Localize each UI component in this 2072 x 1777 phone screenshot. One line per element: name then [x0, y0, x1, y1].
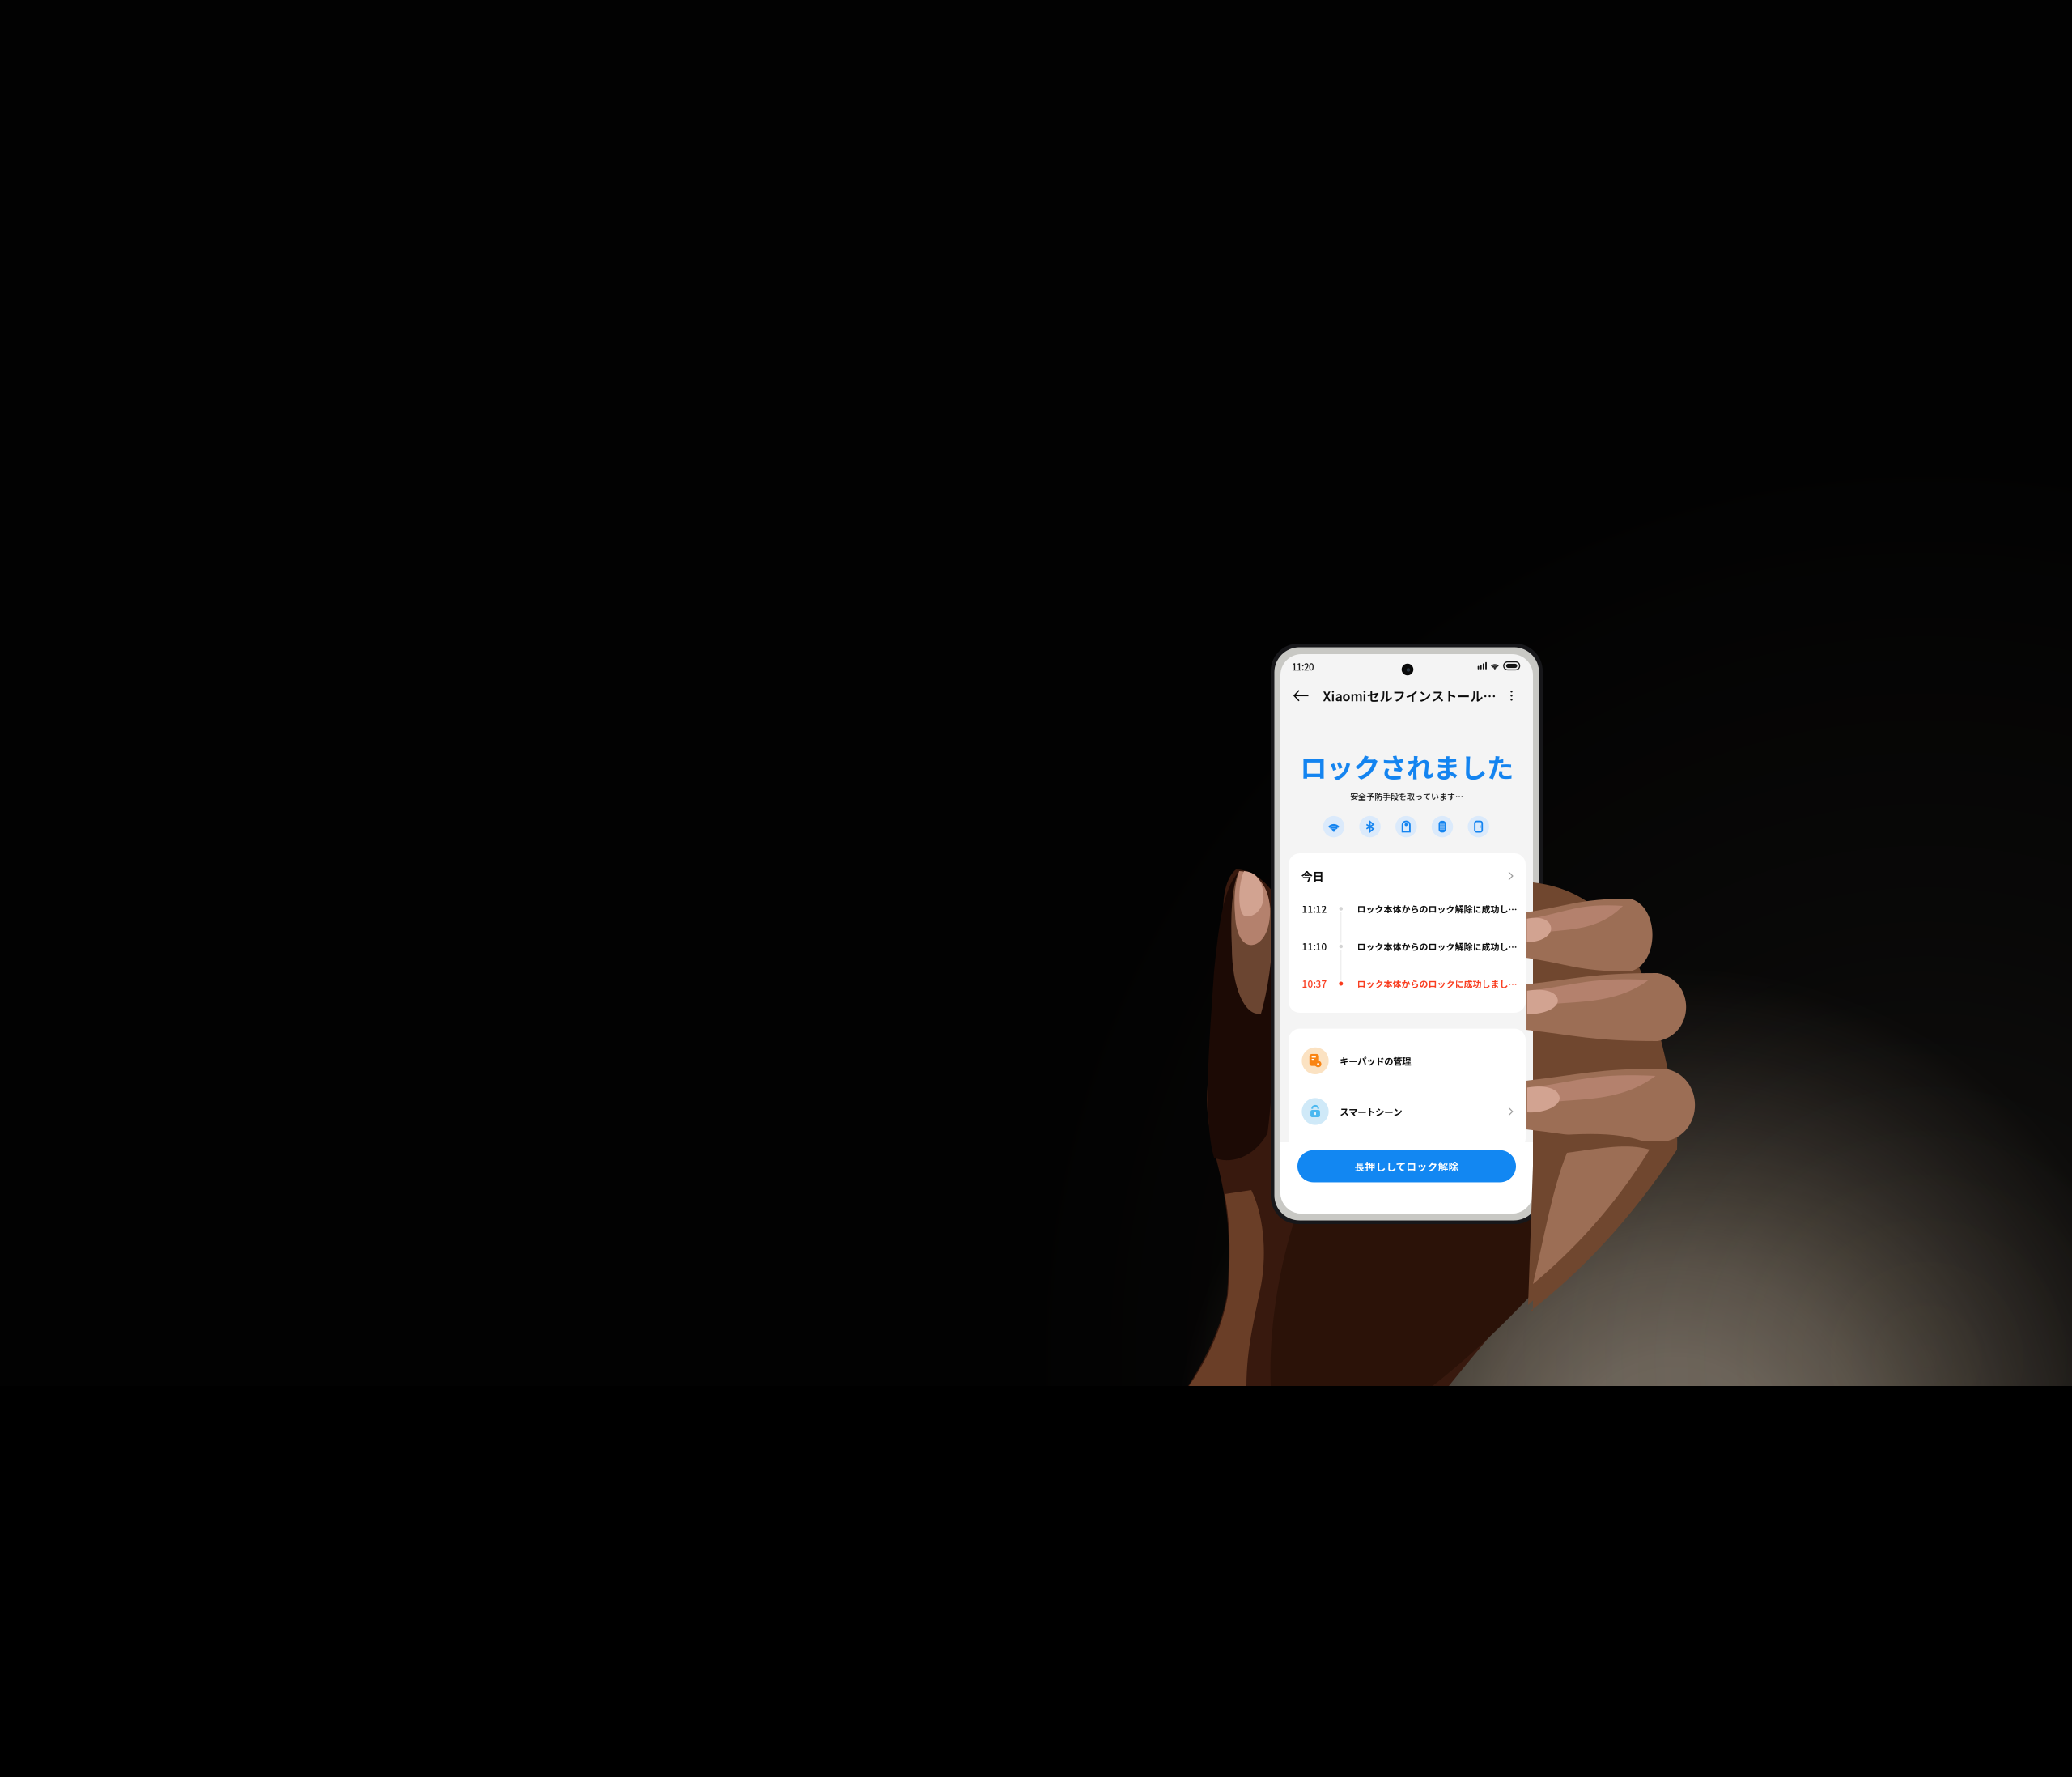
button[interactable]: キーパッド — [1432, 816, 1453, 837]
staticText: 11:20 — [1292, 660, 1314, 673]
button[interactable]: その他のオプション — [1500, 684, 1523, 707]
button[interactable]: Wi‑Fi — [1323, 816, 1345, 837]
staticText: 11:10 — [1302, 940, 1327, 953]
button[interactable]: 戻る — [1287, 682, 1315, 709]
staticText: スマートシーン — [1340, 1105, 1402, 1118]
staticText: ロック本体からのロック解除に成功し… — [1357, 940, 1517, 953]
button[interactable]: 11:10 — [1280, 654, 1533, 1214]
staticText: ロック本体からのロックに成功しまし… — [1357, 977, 1517, 990]
staticText: 安全予防手段を取っています… — [1350, 790, 1463, 802]
button[interactable]: ドアセンサー — [1395, 816, 1417, 837]
button[interactable]: ドア — [1468, 816, 1489, 837]
staticText: 11:12 — [1302, 902, 1327, 916]
button[interactable]: 10:37 — [1280, 654, 1533, 1214]
staticText: ロックされました — [1300, 747, 1514, 786]
button[interactable]: 今日 — [1280, 654, 1533, 1214]
staticText: 10:37 — [1302, 977, 1327, 991]
staticText: キーパッドの管理 — [1340, 1054, 1411, 1067]
button[interactable]: キーパッドの管理 — [1280, 654, 1533, 1214]
button[interactable]: スマートシーン — [1280, 654, 1533, 1214]
button[interactable]: 長押ししてロック解除 — [1297, 1150, 1516, 1182]
staticText: 長押ししてロック解除 — [1354, 1159, 1459, 1174]
staticText: ロック本体からのロック解除に成功し… — [1357, 902, 1517, 915]
button[interactable]: Bluetooth — [1359, 816, 1381, 837]
staticText: Xiaomiセルフインストール… — [1323, 686, 1496, 705]
button[interactable]: 11:12 — [1280, 654, 1533, 1214]
staticText: 今日 — [1301, 868, 1324, 884]
